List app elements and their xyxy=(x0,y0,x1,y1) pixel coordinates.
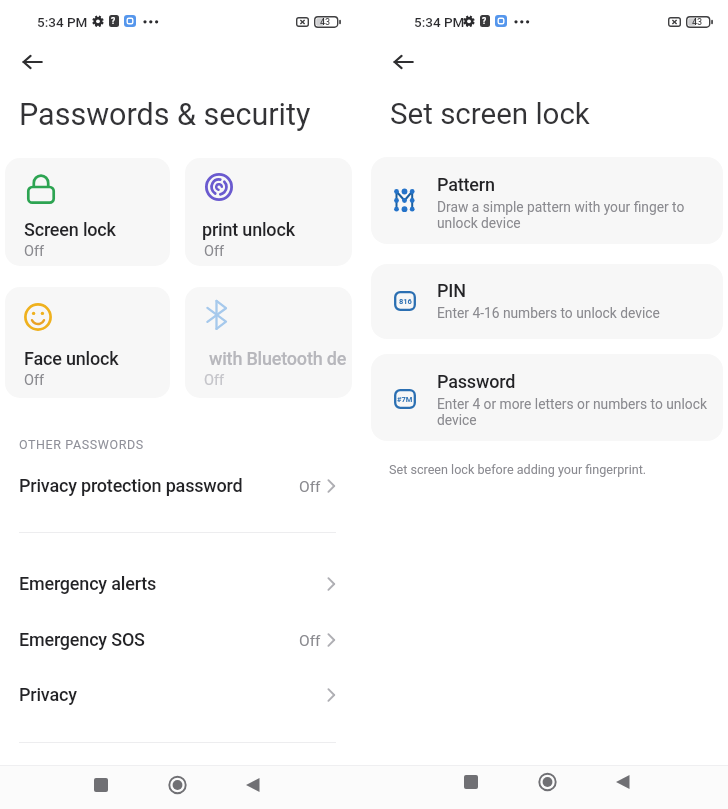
button[interactable]: Privacy protection password xyxy=(0,466,364,518)
staticText: Off xyxy=(24,243,45,260)
button[interactable] xyxy=(240,772,266,798)
staticText: Password xyxy=(437,371,516,392)
staticText: Draw a simple pattern with your finger t… xyxy=(437,199,709,231)
button[interactable] xyxy=(385,47,422,77)
button[interactable]: Pattern xyxy=(371,157,723,244)
staticText: Face unlock xyxy=(24,348,119,369)
button[interactable] xyxy=(163,771,191,799)
staticText: OTHER PASSWORDS xyxy=(19,437,144,452)
button[interactable] xyxy=(458,769,484,795)
staticText: Passwords & security xyxy=(19,97,311,133)
staticText: Set screen lock before adding your finge… xyxy=(389,462,647,477)
button[interactable]: print unlock xyxy=(185,158,352,266)
staticText: 43 xyxy=(320,17,331,28)
staticText: 5:34 PM xyxy=(37,14,88,30)
button[interactable]: Privacy xyxy=(0,675,364,727)
staticText: ? xyxy=(111,16,116,26)
button[interactable] xyxy=(14,47,51,77)
button[interactable]: Emergency SOS xyxy=(0,620,364,672)
staticText: Off xyxy=(204,243,225,260)
staticText: Set screen lock xyxy=(390,97,590,132)
staticText: Privacy protection password xyxy=(19,475,243,496)
staticText: Off xyxy=(299,632,321,650)
staticText: print unlock xyxy=(202,219,295,240)
staticText: ? xyxy=(482,16,487,26)
button[interactable]: Face unlock xyxy=(5,287,170,398)
staticText: PIN xyxy=(437,280,466,301)
button[interactable]: Emergency alerts xyxy=(0,564,364,616)
button[interactable]: 816 xyxy=(371,264,723,339)
button[interactable] xyxy=(88,772,114,798)
staticText: Off xyxy=(204,372,225,389)
staticText: 43 xyxy=(692,17,703,28)
staticText: Pattern xyxy=(437,174,495,195)
staticText: Off xyxy=(24,372,45,389)
staticText: #7M xyxy=(397,395,413,404)
staticText: Off xyxy=(299,478,321,496)
staticText: 5:34 PM xyxy=(414,14,465,30)
staticText: Screen lock xyxy=(24,219,116,240)
button[interactable]: #7M xyxy=(371,354,723,441)
button[interactable]: with Bluetooth de xyxy=(185,287,352,398)
button[interactable] xyxy=(610,769,636,795)
staticText: Emergency alerts xyxy=(19,573,157,594)
staticText: Enter 4-16 numbers to unlock device xyxy=(437,305,660,321)
staticText: Enter 4 or more letters or numbers to un… xyxy=(437,396,709,428)
staticText: with Bluetooth de xyxy=(209,348,347,369)
button[interactable]: Screen lock xyxy=(5,158,170,266)
staticText: 816 xyxy=(399,297,412,306)
staticText: Emergency SOS xyxy=(19,629,145,650)
button[interactable] xyxy=(533,768,561,796)
staticText: Privacy xyxy=(19,684,77,705)
